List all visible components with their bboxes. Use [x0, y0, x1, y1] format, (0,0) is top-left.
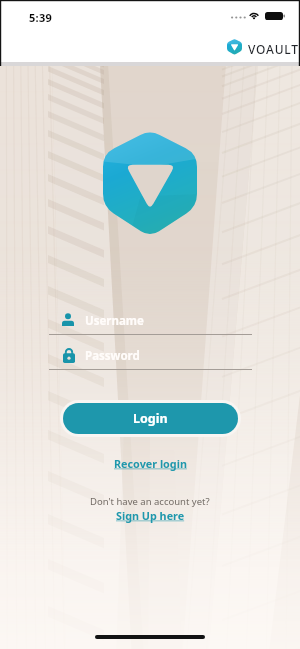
button[interactable]: Login [63, 403, 238, 434]
staticText: VOAULT [248, 41, 299, 57]
button[interactable]: Sign Up here [110, 506, 191, 525]
button[interactable]: Password [49, 347, 252, 363]
staticText: Username [85, 313, 144, 329]
staticText: 5:39 [29, 10, 53, 25]
staticText: Login [133, 410, 168, 427]
staticText: Don't have an account yet? [90, 495, 210, 508]
staticText: Password [85, 348, 140, 364]
button[interactable]: Recover login [108, 454, 193, 473]
button[interactable]: Username [49, 312, 252, 328]
